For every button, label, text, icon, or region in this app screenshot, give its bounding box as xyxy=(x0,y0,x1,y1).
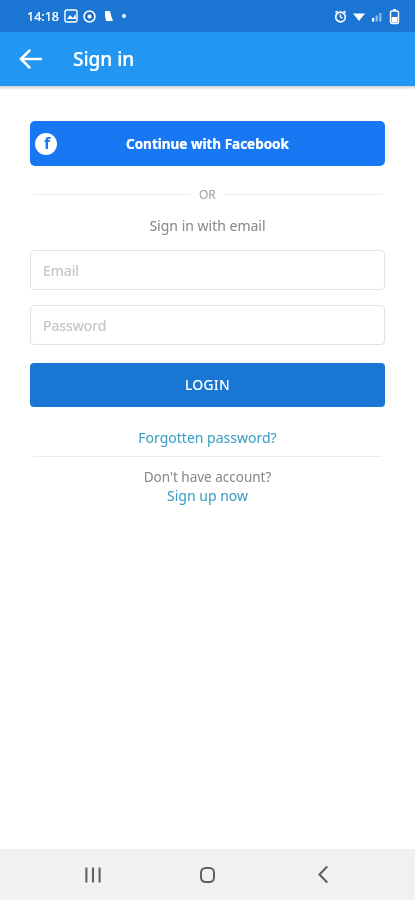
staticText: Continue with Facebook xyxy=(126,135,289,153)
button[interactable] xyxy=(35,849,150,900)
button[interactable] xyxy=(150,849,265,900)
staticText: Password xyxy=(43,316,107,335)
button[interactable]: Forgotten password? xyxy=(0,428,415,447)
staticText: Sign in with email xyxy=(0,216,415,235)
staticText: OR xyxy=(199,186,216,202)
staticText: Don't have account? xyxy=(0,468,415,486)
staticText: f xyxy=(44,132,51,154)
staticText: LOGIN xyxy=(185,376,231,394)
button[interactable]: LOGIN xyxy=(30,363,385,407)
button[interactable]: f xyxy=(30,121,385,166)
staticText: Email xyxy=(43,261,79,280)
button[interactable] xyxy=(265,849,380,900)
button[interactable]: Sign up now xyxy=(0,486,415,505)
button[interactable]: Email xyxy=(30,250,385,290)
button[interactable] xyxy=(0,32,62,86)
button[interactable]: Password xyxy=(30,305,385,345)
staticText: 14:18 xyxy=(27,8,59,25)
staticText: Sign in xyxy=(73,46,135,72)
